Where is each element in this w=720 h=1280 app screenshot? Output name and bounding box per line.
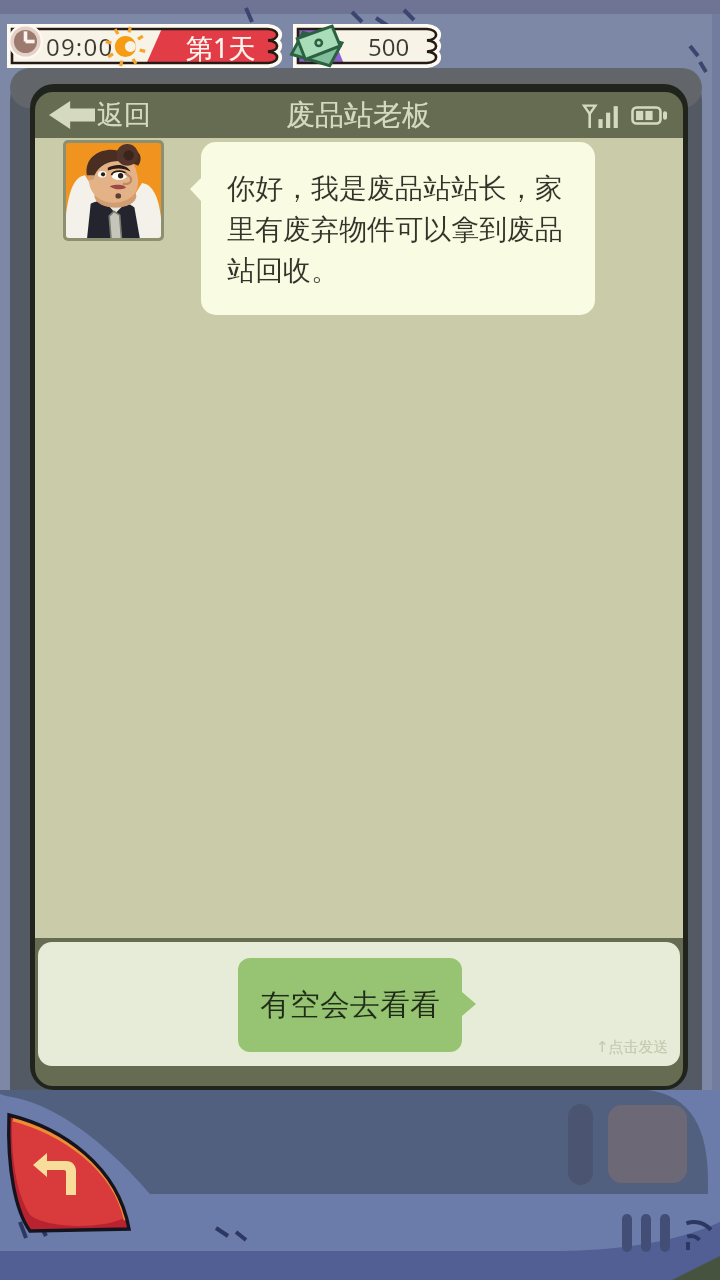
button[interactable]: 返回 bbox=[49, 98, 151, 132]
staticText: 09:00 bbox=[46, 30, 114, 63]
staticText: 你好，我是废品站站长，家里有废弃物件可以拿到废品站回收。 bbox=[227, 171, 577, 288]
button[interactable]: 有空会去看看 bbox=[38, 942, 680, 1066]
staticText: 第1天 bbox=[186, 29, 256, 63]
button[interactable]: Back bbox=[0, 1108, 140, 1240]
staticText: 有空会去看看 bbox=[260, 986, 440, 1024]
staticText: 废品站老板 bbox=[286, 97, 431, 134]
staticText: ↑点击发送 bbox=[596, 1038, 669, 1057]
staticText: 返回 bbox=[97, 98, 151, 132]
staticText: 500 bbox=[368, 30, 410, 63]
